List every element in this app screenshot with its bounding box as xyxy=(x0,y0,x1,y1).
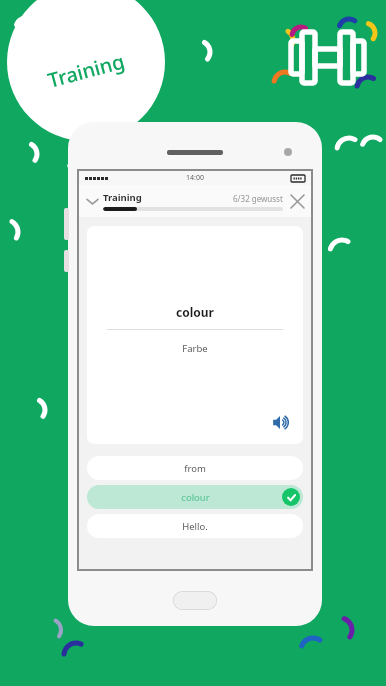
staticText: Farbe xyxy=(87,342,303,355)
staticText: Hello. xyxy=(182,520,208,533)
staticText: from xyxy=(184,462,206,475)
button[interactable]: colour xyxy=(87,485,303,509)
staticText: Training xyxy=(103,191,142,204)
button[interactable]: Play pronunciation xyxy=(269,410,293,434)
button[interactable]: from xyxy=(87,456,303,480)
button[interactable]: Hello. xyxy=(87,514,303,538)
staticText: colour xyxy=(181,491,210,504)
staticText: 14:00 xyxy=(186,173,204,183)
staticText: colour xyxy=(87,304,303,320)
button[interactable]: colour xyxy=(87,226,303,444)
button[interactable]: Collapse xyxy=(81,190,103,212)
staticText: 6/32 gewusst xyxy=(233,193,283,204)
staticText: Training xyxy=(45,47,128,94)
button[interactable]: Close xyxy=(285,189,309,213)
